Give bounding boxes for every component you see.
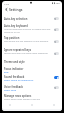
button[interactable]: Voice feedback <box>2 85 62 92</box>
staticText: Blue <box>4 71 9 74</box>
staticText: Select voice <box>4 89 16 92</box>
staticText: Sound feedback <box>4 75 25 79</box>
button[interactable]: Theme and style <box>2 60 62 64</box>
staticText: Use the keyboard shortcut to toggle auto… <box>4 28 52 33</box>
button[interactable]: Recents <box>52 103 56 107</box>
staticText: Settings <box>9 7 23 12</box>
staticText: Focus indicator <box>4 67 24 71</box>
button[interactable]: Sound feedback <box>2 75 62 82</box>
button[interactable]: Ignore repeated keys <box>2 48 62 55</box>
button[interactable]: Toggle <box>54 17 59 20</box>
button[interactable]: Toggle <box>54 76 59 79</box>
staticText: Select which rows appear in the list <box>4 98 40 101</box>
staticText: Auto-key keyboard <box>4 24 28 28</box>
button[interactable]: Toggle <box>54 86 59 89</box>
staticText: Tap position <box>4 36 20 40</box>
button[interactable]: Back <box>8 103 12 107</box>
staticText: Ignore repeated keys <box>4 48 31 52</box>
button[interactable]: Tap position <box>2 36 62 43</box>
staticText: 1:49 <box>4 2 9 5</box>
staticText: Auto-key selection <box>4 17 28 21</box>
staticText: Select sound for interactions <box>4 79 34 82</box>
staticText: Theme and style <box>4 60 25 64</box>
button[interactable]: Toggle <box>54 40 59 43</box>
staticText: Voice feedback <box>4 85 24 89</box>
staticText: ▮ ▮ 78% <box>52 2 60 5</box>
button[interactable]: Home <box>30 103 34 107</box>
button[interactable]: Toggle <box>54 28 59 31</box>
button[interactable]: Auto-key keyboard <box>2 24 62 33</box>
button[interactable]: Auto-key selection <box>2 17 62 21</box>
button[interactable]: Focus indicator <box>2 67 62 74</box>
staticText: Manage rows options <box>4 94 32 98</box>
staticText: Sets where the tap appears on the timeli… <box>4 40 49 43</box>
button[interactable]: Manage rows options <box>2 94 62 101</box>
staticText: Ignore keys with the same value repeatin… <box>4 52 48 55</box>
button[interactable]: Back <box>3 6 9 12</box>
button[interactable]: Toggle <box>54 52 59 55</box>
